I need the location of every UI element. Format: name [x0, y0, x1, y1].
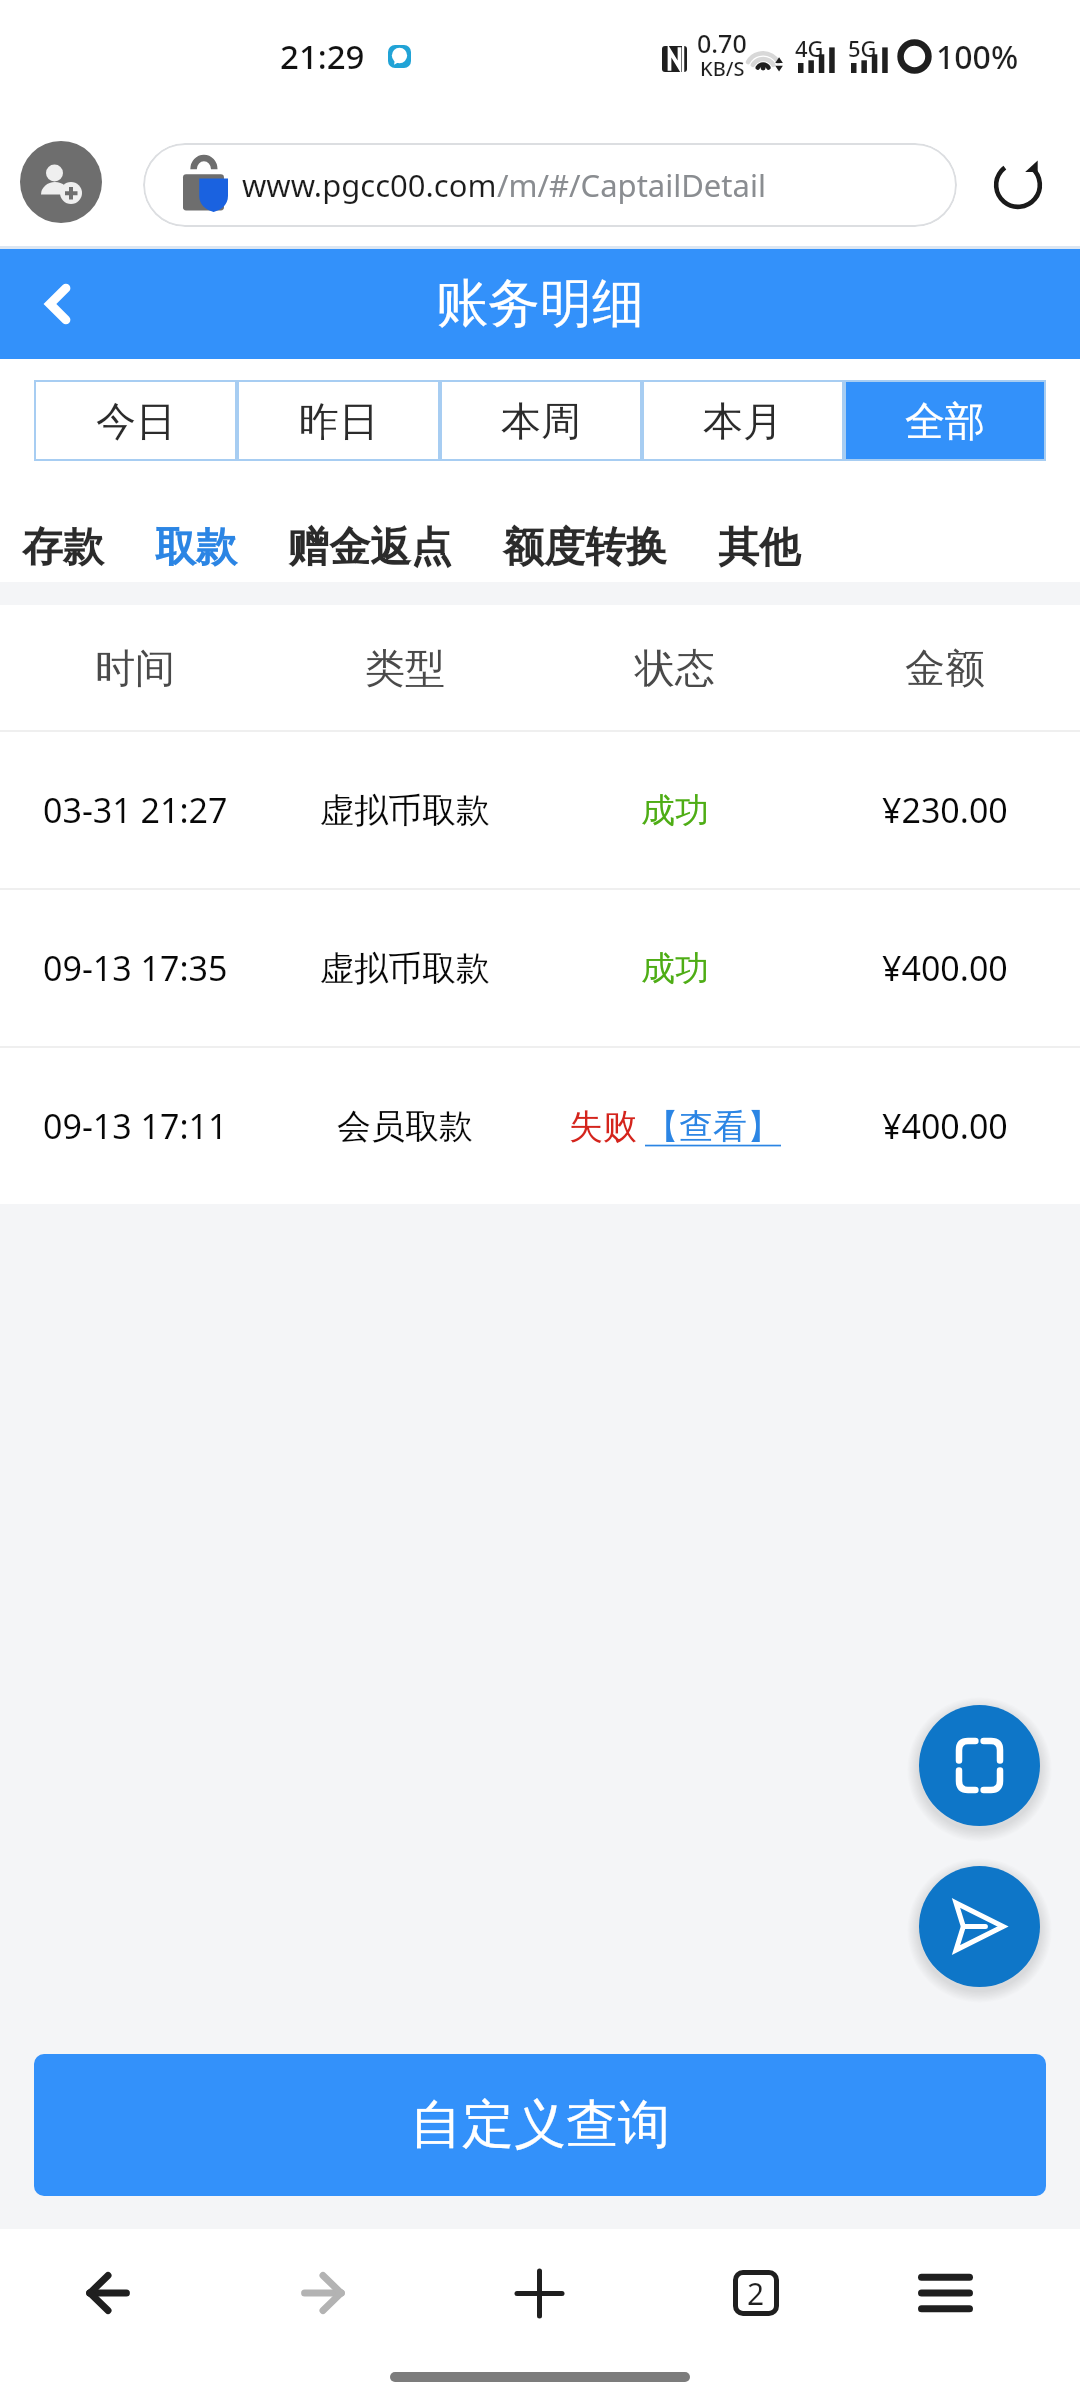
staticText: 03-31 21:27	[43, 787, 228, 833]
button[interactable]: New tab	[491, 2245, 587, 2341]
staticText: www.pgcc00.com	[242, 164, 497, 206]
staticText: 100%	[936, 35, 1019, 79]
staticText: 21:29	[280, 34, 365, 79]
staticText: ¥230.00	[882, 787, 1008, 833]
button[interactable]: 全部	[844, 380, 1046, 461]
button[interactable]: 本月	[642, 380, 844, 461]
staticText: /m/#/CaptailDetail	[497, 164, 766, 206]
button[interactable]: Back	[60, 2245, 156, 2341]
staticText: 本月	[703, 396, 783, 446]
staticText: 状态	[635, 643, 715, 693]
staticText: 虚拟币取款	[320, 789, 490, 832]
staticText: 会员取款	[337, 1105, 473, 1148]
button[interactable]: Reload	[978, 145, 1058, 225]
button[interactable]: 09-13 17:35	[0, 890, 1080, 1046]
staticText: 09-13 17:11	[43, 1103, 228, 1149]
staticText: 昨日	[299, 396, 379, 446]
button[interactable]: Back	[0, 249, 114, 359]
staticText: 赠金返点	[288, 522, 452, 574]
staticText: 成功	[641, 789, 709, 832]
staticText: 其他	[718, 522, 800, 574]
button[interactable]: 03-31 21:27	[0, 732, 1080, 888]
staticText: 0.70	[697, 26, 747, 60]
button[interactable]: Profile	[20, 141, 102, 223]
button[interactable]: 额度转换	[503, 522, 667, 574]
staticText: 存款	[22, 522, 104, 574]
button[interactable]: 今日	[34, 380, 237, 461]
button[interactable]: Scan QR code	[919, 1705, 1040, 1826]
staticText: 4G	[795, 33, 824, 63]
staticText: 取款	[155, 522, 237, 574]
button[interactable]: Menu	[897, 2245, 993, 2341]
staticText: 额度转换	[503, 522, 667, 574]
staticText: ¥400.00	[882, 945, 1008, 991]
staticText: ¥400.00	[882, 1103, 1008, 1149]
staticText: 账务明细	[436, 271, 644, 337]
staticText: 5G	[848, 33, 877, 63]
staticText: 成功	[641, 947, 709, 990]
button[interactable]: Tabs	[711, 2248, 801, 2338]
staticText: 09-13 17:35	[43, 945, 228, 991]
staticText: 2	[747, 2273, 765, 2314]
staticText: 自定义查询	[410, 2092, 670, 2158]
button[interactable]: 本周	[440, 380, 642, 461]
button[interactable]: 【查看】	[645, 1105, 781, 1148]
staticText: 本周	[501, 396, 581, 446]
staticText: 失败	[569, 1105, 637, 1148]
button[interactable]: www.pgcc00.com	[143, 143, 957, 227]
button[interactable]: 09-13 17:11	[0, 1048, 1080, 1204]
staticText: 时间	[95, 643, 175, 693]
button[interactable]: 存款	[22, 522, 104, 574]
button[interactable]: 赠金返点	[288, 522, 452, 574]
button[interactable]: 自定义查询	[34, 2054, 1046, 2196]
staticText: 类型	[365, 643, 445, 693]
button[interactable]: Forward	[275, 2245, 371, 2341]
button[interactable]: 昨日	[237, 380, 440, 461]
button[interactable]: Send	[919, 1866, 1040, 1987]
staticText: 全部	[905, 396, 985, 446]
staticText: 金额	[905, 643, 985, 693]
staticText: 虚拟币取款	[320, 947, 490, 990]
button[interactable]: 取款	[155, 522, 237, 574]
staticText: KB/S	[700, 55, 745, 82]
button[interactable]: 其他	[718, 522, 800, 574]
staticText: 今日	[96, 396, 176, 446]
